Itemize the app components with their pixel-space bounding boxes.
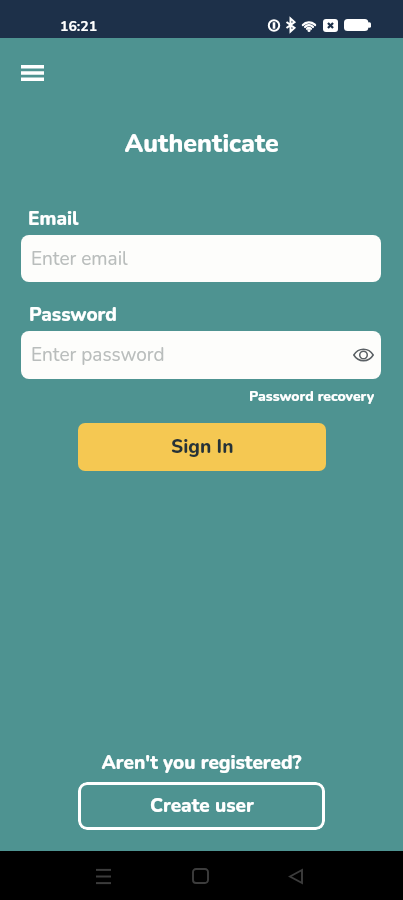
button[interactable]: Back xyxy=(277,857,315,895)
button[interactable]: Sign In xyxy=(78,423,326,471)
button[interactable]: Recents xyxy=(84,857,122,895)
staticText: Enter password xyxy=(31,342,165,368)
staticText: Enter email xyxy=(31,246,128,272)
staticText: Password xyxy=(29,302,117,328)
staticText: 16:21 xyxy=(60,17,98,36)
button[interactable]: Show password xyxy=(349,341,377,369)
button[interactable]: Enter password xyxy=(21,331,381,379)
staticText: Aren't you registered? xyxy=(0,750,403,776)
staticText: Authenticate xyxy=(0,127,403,161)
button[interactable]: Enter email xyxy=(21,235,381,282)
staticText: Create user xyxy=(150,793,254,819)
button[interactable]: Home xyxy=(181,857,219,895)
button[interactable]: Create user xyxy=(78,782,325,830)
button[interactable]: Menu xyxy=(14,55,50,91)
staticText: Email xyxy=(28,206,79,232)
staticText: Sign In xyxy=(171,434,234,460)
button[interactable]: Password recovery xyxy=(249,387,375,406)
